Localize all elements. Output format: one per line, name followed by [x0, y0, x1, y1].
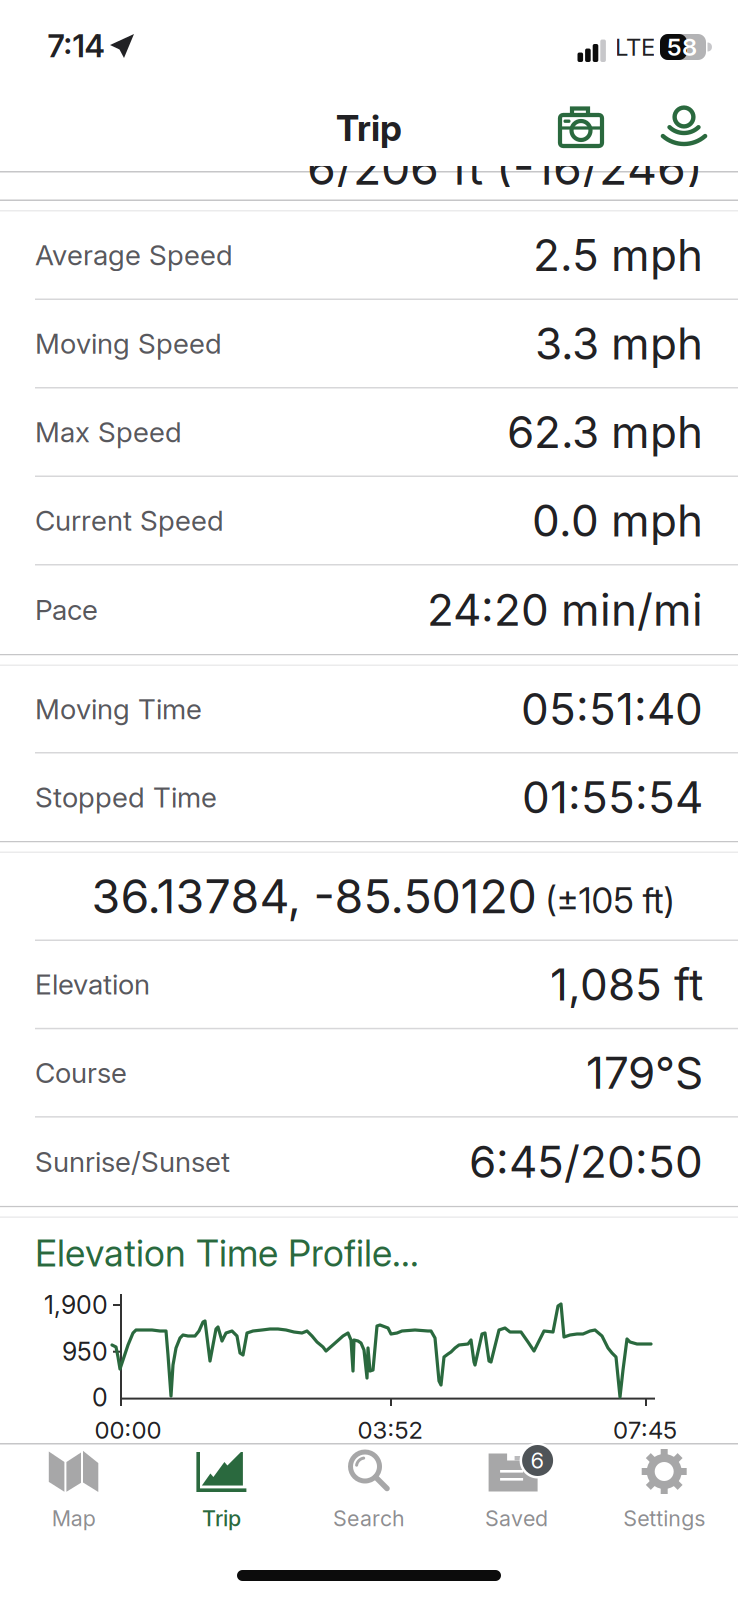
- staticText: Max Speed: [35, 415, 182, 449]
- staticText: Settings: [623, 1505, 705, 1531]
- staticText: 36.13784, -85.50120: [91, 868, 536, 924]
- staticText: 1,900: [44, 1290, 108, 1320]
- staticText: 00:00: [94, 1415, 161, 1444]
- button[interactable]: Elevation Time Profile...: [35, 1231, 703, 1275]
- staticText: Elevation: [35, 967, 150, 1001]
- staticText: Elevation Time Profile...: [35, 1231, 419, 1275]
- button[interactable]: Trip: [148, 1444, 295, 1556]
- staticText: 03:52: [357, 1415, 422, 1444]
- staticText: 6:45/20:50: [469, 1135, 703, 1188]
- staticText: Stopped Time: [35, 780, 217, 814]
- staticText: Map: [52, 1505, 96, 1531]
- staticText: 7:14: [47, 27, 104, 65]
- staticText: 07:45: [613, 1415, 677, 1444]
- staticText: 0.0 mph: [532, 494, 703, 547]
- staticText: 1,085 ft: [550, 958, 703, 1011]
- staticText: Moving Speed: [35, 327, 222, 360]
- staticText: Saved: [485, 1505, 548, 1531]
- staticText: 62.3 mph: [507, 405, 703, 459]
- button[interactable]: Map: [0, 1444, 148, 1556]
- staticText: 950: [62, 1337, 108, 1367]
- staticText: Average Speed: [35, 238, 233, 272]
- button[interactable]: Waypoint: [660, 105, 708, 153]
- staticText: 3.3 mph: [535, 317, 703, 370]
- staticText: 01:55:54: [522, 771, 703, 824]
- staticText: Pace: [35, 593, 98, 627]
- staticText: 0: [92, 1382, 108, 1413]
- staticText: 6: [531, 1447, 545, 1474]
- staticText: Current Speed: [35, 504, 224, 537]
- staticText: (±105 ft): [545, 879, 674, 922]
- staticText: Course: [35, 1056, 127, 1090]
- staticText: LTE: [615, 32, 655, 61]
- button[interactable]: Search: [295, 1444, 443, 1556]
- button[interactable]: Settings: [590, 1444, 738, 1556]
- staticText: 58: [667, 32, 697, 61]
- staticText: 24:20 min/mi: [427, 583, 703, 636]
- staticText: 2.5 mph: [533, 228, 703, 282]
- staticText: Trip: [202, 1505, 241, 1531]
- button[interactable]: 6: [443, 1444, 590, 1556]
- staticText: 6/206 ft (-16/246): [307, 140, 703, 196]
- staticText: Sunrise/Sunset: [35, 1145, 230, 1179]
- staticText: Trip: [336, 106, 402, 150]
- staticText: 05:51:40: [521, 682, 703, 736]
- staticText: Search: [333, 1505, 405, 1531]
- staticText: 179°S: [586, 1046, 703, 1099]
- button[interactable]: Camera: [559, 107, 605, 151]
- staticText: Moving Time: [35, 692, 202, 726]
